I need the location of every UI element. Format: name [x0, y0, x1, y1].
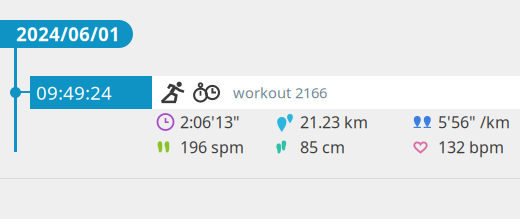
- staticText: 2024/06/01: [16, 22, 120, 46]
- staticText: 09:49:24: [36, 80, 112, 105]
- button[interactable]: 09:49:24: [0, 0, 122, 33]
- button[interactable]: Run workout 2166: [0, 0, 368, 33]
- staticText: 196 spm: [180, 136, 244, 158]
- staticText: 2:06'13": [180, 111, 240, 133]
- staticText: 132 bpm: [438, 136, 504, 158]
- staticText: 85 cm: [300, 136, 345, 158]
- staticText: 21.23 km: [300, 111, 368, 133]
- staticText: workout 2166: [233, 83, 327, 102]
- button[interactable]: 2024/06/01: [0, 0, 151, 28]
- staticText: 5'56" /km: [438, 111, 510, 133]
